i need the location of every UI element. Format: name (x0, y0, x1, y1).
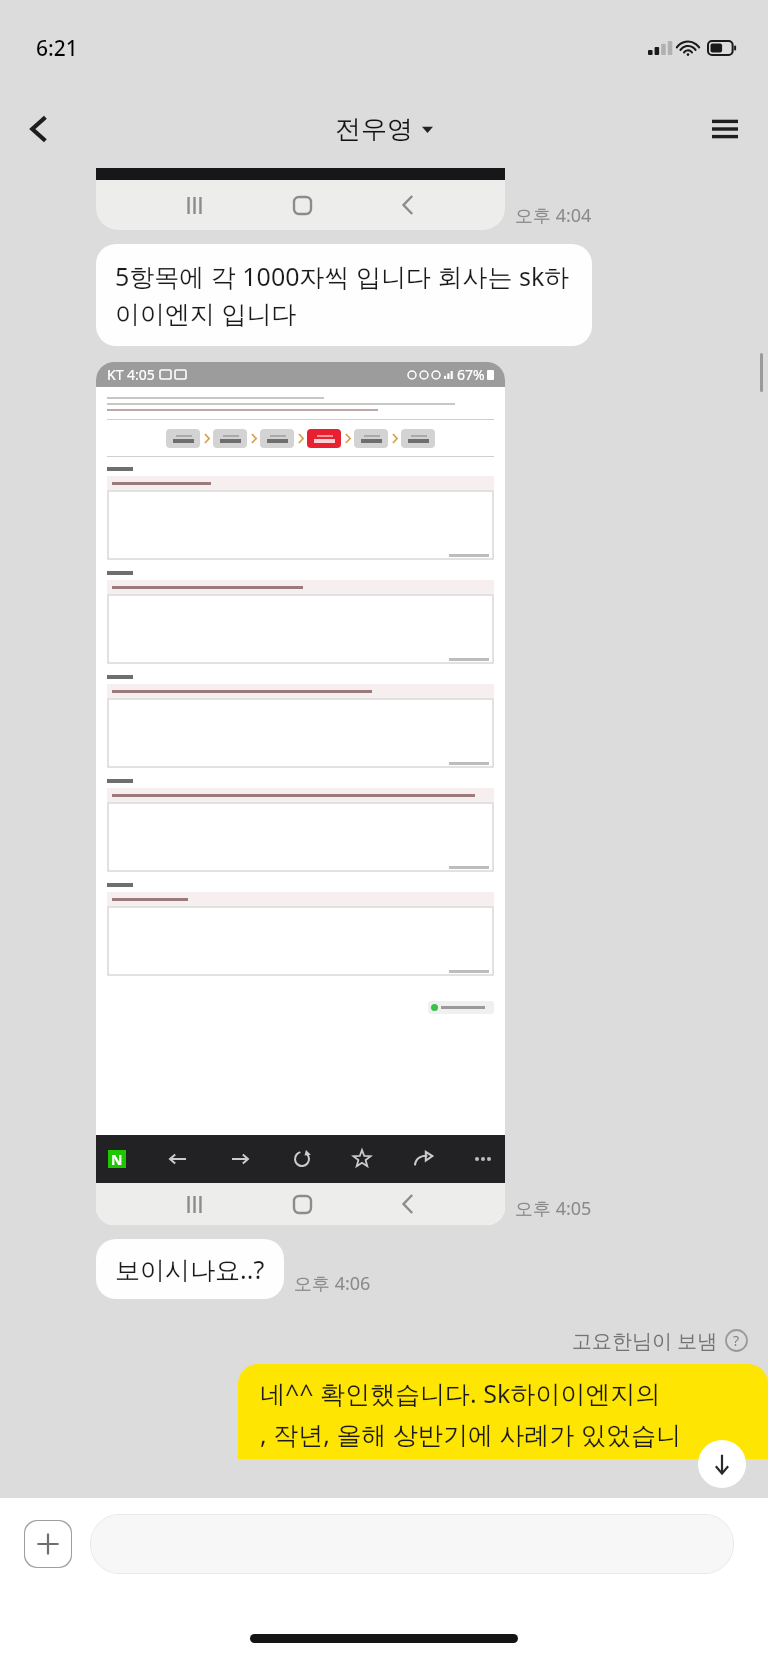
staticText: N (111, 1150, 123, 1168)
staticText: 6:21 (36, 34, 78, 63)
button[interactable]: 네^^ 확인했습니다. Sk하이이엔지의 , 작년, 올해 상반기에 사례가 있… (238, 1364, 768, 1459)
button[interactable]: 5항목에 각 1000자씩 입니다 회사는 sk하 이이엔지 입니다 (96, 244, 592, 346)
staticText: 네^^ 확인했습니다. Sk하이이엔지의 , 작년, 올해 상반기에 사례가 있… (260, 1376, 681, 1452)
button[interactable]: Scroll to bottom (698, 1440, 746, 1488)
staticText: 오후 4:06 (294, 1271, 371, 1296)
staticText: 5항목에 각 1000자씩 입니다 회사는 sk하 이이엔지 입니다 (115, 259, 570, 331)
staticText: 고요한님이 보냄 (572, 1327, 718, 1354)
button[interactable]: 보이시나요..? (96, 1239, 284, 1299)
button[interactable]: Info (725, 1329, 748, 1352)
staticText: 전우영 (335, 113, 413, 146)
button[interactable]: Screenshot photo (96, 362, 505, 1225)
button[interactable]: Back (12, 102, 66, 156)
button[interactable]: 전우영 (335, 113, 433, 146)
staticText: KT 4:05 (107, 365, 155, 384)
staticText: ? (733, 1331, 740, 1350)
button[interactable]: Photo (96, 168, 505, 230)
staticText: 오후 4:04 (515, 203, 592, 228)
staticText: 보이시나요..? (115, 1252, 265, 1286)
staticText: 67% (457, 365, 485, 384)
staticText: 오후 4:05 (515, 1196, 592, 1221)
button[interactable]: Attach (24, 1520, 72, 1568)
button[interactable]: Menu (698, 102, 752, 156)
